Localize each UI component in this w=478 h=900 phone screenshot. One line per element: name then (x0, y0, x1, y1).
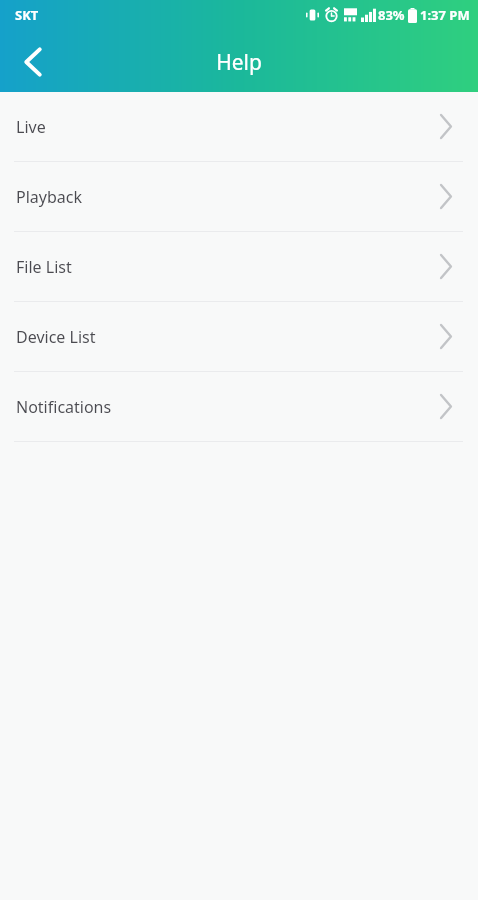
button[interactable]: Live (0, 92, 478, 162)
staticText: 1:37 PM (420, 6, 470, 24)
staticText: SKT (15, 6, 39, 24)
staticText: Playback (16, 186, 82, 208)
staticText: 83% (378, 6, 405, 24)
staticText: Notifications (16, 396, 112, 418)
staticText: Live (16, 116, 46, 138)
button[interactable]: Device List (0, 302, 478, 372)
button[interactable]: File List (0, 232, 478, 302)
button[interactable]: Back (2, 34, 64, 90)
button[interactable]: Notifications (0, 372, 478, 442)
button[interactable]: Playback (0, 162, 478, 232)
staticText: Device List (16, 326, 96, 348)
staticText: File List (16, 256, 72, 278)
staticText: Help (0, 48, 478, 77)
